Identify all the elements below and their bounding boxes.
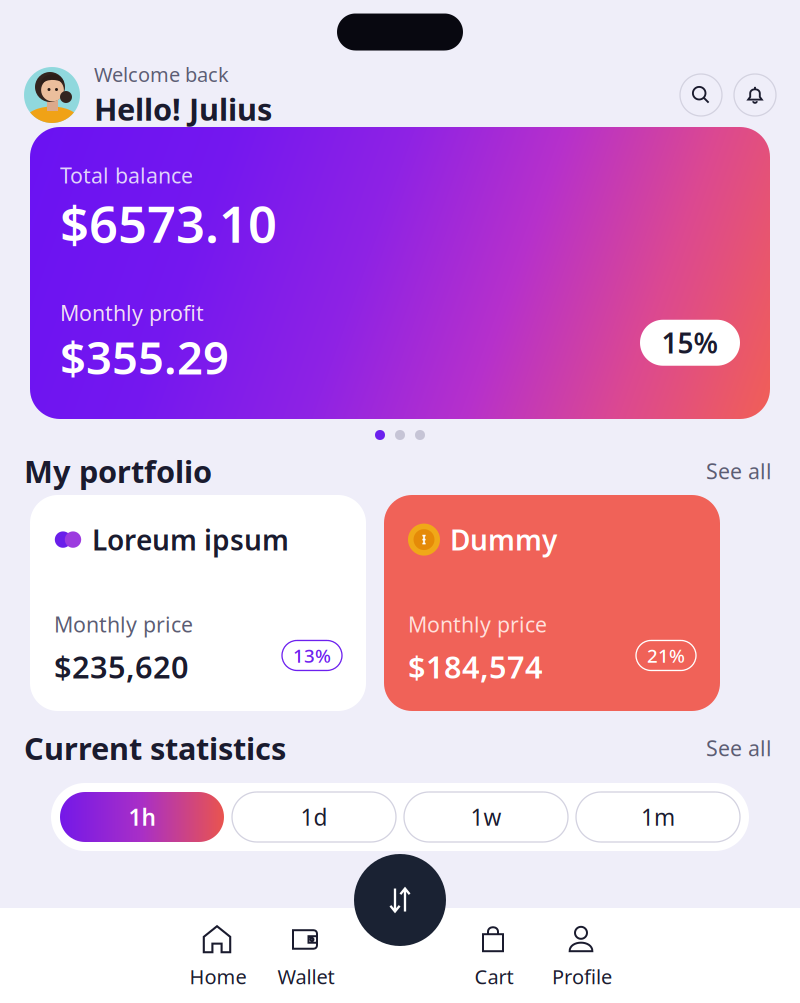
button[interactable]: 1d bbox=[232, 792, 396, 842]
button[interactable]: 1m bbox=[576, 792, 740, 842]
staticText: $184,574 bbox=[408, 646, 543, 687]
staticText: 1d bbox=[300, 802, 327, 832]
button[interactable]: 1w bbox=[404, 792, 568, 842]
staticText: 1h bbox=[128, 802, 155, 832]
staticText: Monthly price bbox=[54, 610, 193, 638]
staticText: Cart bbox=[474, 963, 513, 990]
staticText: $6573.10 bbox=[60, 189, 277, 257]
staticText: Loreum ipsum bbox=[92, 521, 289, 558]
staticText: 15% bbox=[661, 324, 718, 361]
staticText: 21% bbox=[647, 643, 685, 668]
staticText: Dummy bbox=[450, 521, 557, 558]
button[interactable]: Transfer bbox=[354, 854, 446, 946]
button[interactable]: Dummy bbox=[384, 495, 720, 711]
staticText: See all bbox=[706, 457, 772, 485]
staticText: Welcome back bbox=[94, 61, 229, 87]
staticText: Monthly price bbox=[408, 610, 547, 638]
staticText: Current statistics bbox=[24, 728, 286, 768]
button[interactable]: Profile bbox=[538, 922, 626, 992]
staticText: 13% bbox=[293, 643, 331, 668]
staticText: My portfolio bbox=[24, 451, 212, 491]
button[interactable]: Wallet bbox=[262, 922, 350, 992]
button[interactable]: Cart bbox=[450, 922, 538, 992]
button[interactable]: See all bbox=[702, 730, 776, 766]
button[interactable]: Notifications bbox=[734, 74, 776, 116]
button[interactable]: Search bbox=[680, 74, 722, 116]
button[interactable]: 1h bbox=[60, 792, 224, 842]
staticText: Monthly profit bbox=[60, 298, 204, 327]
staticText: $355.29 bbox=[60, 327, 229, 387]
staticText: See all bbox=[706, 734, 772, 762]
staticText: Profile bbox=[552, 963, 612, 990]
staticText: Home bbox=[189, 963, 246, 990]
staticText: 1w bbox=[470, 802, 501, 832]
button[interactable]: Home bbox=[174, 922, 262, 992]
staticText: Total balance bbox=[60, 161, 193, 189]
staticText: Wallet bbox=[277, 963, 334, 990]
staticText: Hello! Julius bbox=[94, 88, 272, 129]
staticText: 1m bbox=[641, 802, 675, 832]
button[interactable]: Loreum ipsum bbox=[30, 495, 366, 711]
staticText: $235,620 bbox=[54, 646, 189, 687]
button[interactable]: See all bbox=[702, 453, 776, 489]
